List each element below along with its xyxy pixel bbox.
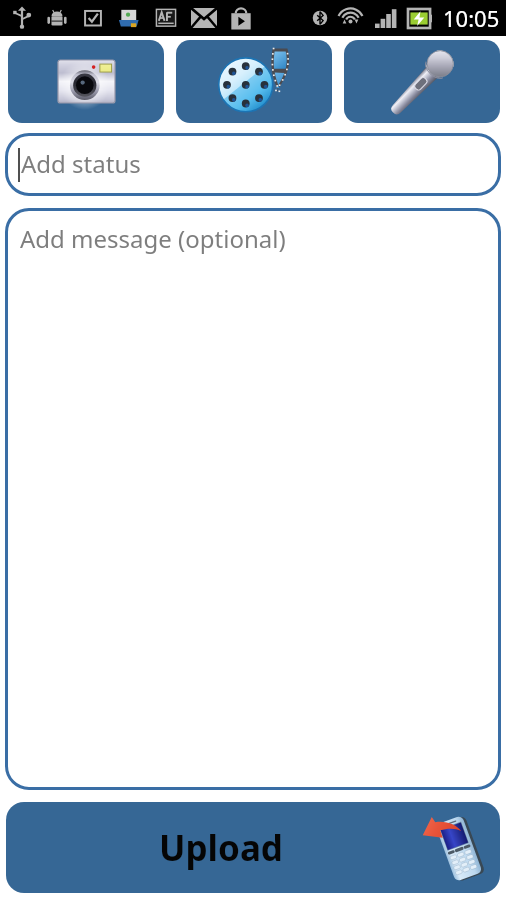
staticText: Add message (optional) (20, 222, 286, 255)
button[interactable]: Take photo (8, 40, 164, 123)
button[interactable]: Add status (5, 133, 501, 196)
button[interactable]: Record audio (344, 40, 500, 123)
staticText: 10:05 (443, 3, 500, 33)
staticText: Upload (159, 824, 283, 872)
button[interactable]: Upload (6, 802, 500, 893)
button[interactable]: Record video (176, 40, 332, 123)
staticText: Add status (21, 147, 141, 180)
button[interactable]: Add message (optional) (5, 208, 501, 790)
